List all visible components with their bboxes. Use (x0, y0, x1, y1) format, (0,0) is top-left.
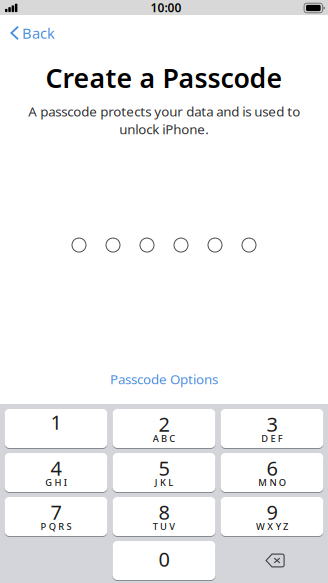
button[interactable]: 4 (4, 453, 107, 492)
staticText: PQRS (41, 520, 71, 533)
staticText: 9 (266, 499, 277, 525)
staticText: 10:00 (150, 0, 181, 15)
staticText: WXYZ (256, 520, 288, 533)
button[interactable]: Delete (220, 541, 323, 580)
staticText: 5 (158, 455, 169, 481)
staticText: Back (22, 23, 55, 43)
staticText: 7 (50, 499, 61, 525)
staticText: A passcode protects your data and is use… (28, 102, 300, 138)
staticText: 2 (158, 411, 169, 437)
staticText: GHI (45, 476, 67, 489)
button[interactable]: 2 (112, 409, 215, 448)
button[interactable]: 5 (112, 453, 215, 492)
staticText: JKL (155, 476, 173, 489)
staticText: DEF (261, 432, 283, 445)
button[interactable]: 3 (220, 409, 323, 448)
button[interactable]: 1 (4, 409, 107, 448)
staticText: 1 (50, 409, 61, 435)
staticText: 0 (158, 546, 169, 572)
staticText: Passcode Options (110, 370, 218, 388)
button[interactable]: 9 (220, 497, 323, 536)
button[interactable]: 7 (4, 497, 107, 536)
staticText: TUV (153, 520, 175, 533)
staticText: ABC (153, 432, 175, 445)
button[interactable]: 6 (220, 453, 323, 492)
button[interactable]: Back (0, 12, 65, 52)
staticText: 3 (266, 411, 277, 437)
staticText: 4 (50, 455, 61, 481)
staticText: 8 (158, 499, 169, 525)
staticText: MNO (258, 476, 286, 489)
staticText: 6 (266, 455, 277, 481)
staticText: Create a Passcode (45, 60, 282, 95)
button[interactable]: Passcode Options (96, 364, 232, 394)
button[interactable]: 8 (112, 497, 215, 536)
button[interactable]: 0 (112, 541, 215, 580)
